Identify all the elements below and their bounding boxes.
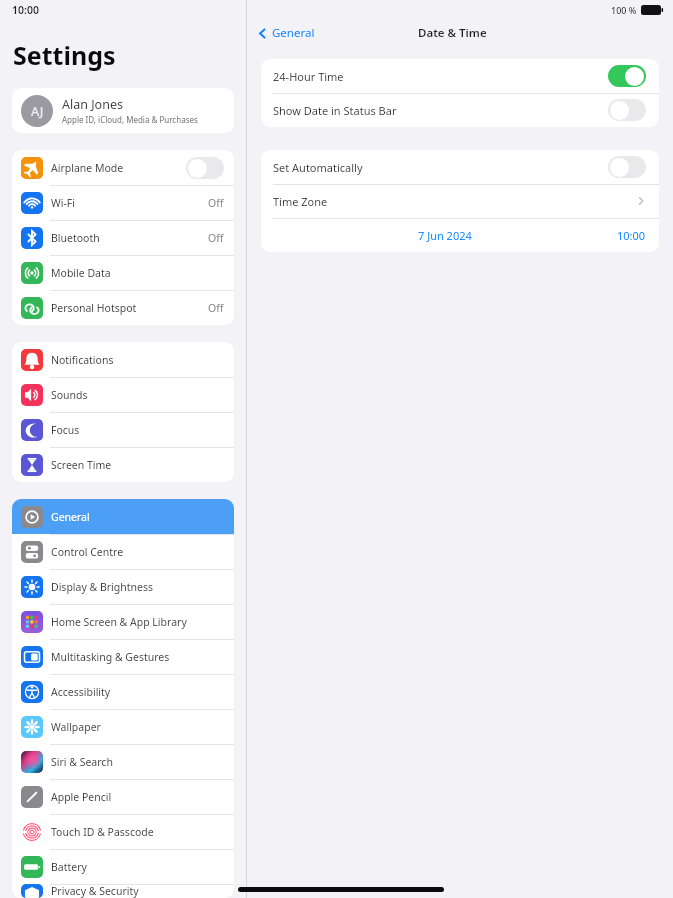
staticText: Bluetooth [51,231,208,245]
staticText: Wi-Fi [51,196,208,210]
other: Open Time Zone [636,196,646,206]
button[interactable]: Airplane Mode [12,150,234,185]
button[interactable]: Set Automatically [261,150,659,184]
button[interactable]: Battery [12,849,234,884]
staticText: Show Date in Status Bar [273,103,608,118]
button[interactable]: 10:00 [617,228,646,243]
button[interactable]: Notifications [12,342,234,377]
staticText: Alan Jones [62,96,123,113]
staticText: Multitasking & Gestures [51,650,224,664]
button[interactable]: General [12,499,234,534]
staticText: Notifications [51,353,224,367]
button[interactable]: Wi-Fi [12,185,234,220]
staticText: 24-Hour Time [273,69,608,84]
staticText: Control Centre [51,545,224,559]
staticText: Privacy & Security [51,884,224,898]
staticText: Off [208,196,224,210]
button[interactable]: Time Zone [261,184,659,218]
button[interactable]: Toggle off [608,156,646,178]
staticText: Date & Time [418,25,487,41]
staticText: 10:00 [12,3,39,17]
button[interactable]: 7 Jun 2024 [418,228,472,243]
staticText: Focus [51,423,224,437]
staticText: Mobile Data [51,266,224,280]
staticText: Time Zone [273,194,636,209]
staticText: Airplane Mode [51,161,186,175]
staticText: 100 % [611,4,637,16]
button[interactable]: Toggle off [608,99,646,121]
button[interactable]: Toggle on [608,65,646,87]
button[interactable]: Home Screen & App Library [12,604,234,639]
button[interactable]: Focus [12,412,234,447]
staticText: Personal Hotspot [51,301,208,315]
button[interactable]: AJ [12,88,234,133]
button[interactable]: Accessibility [12,674,234,709]
staticText: Sounds [51,388,224,402]
button[interactable]: Multitasking & Gestures [12,639,234,674]
staticText: General [51,510,224,524]
staticText: Screen Time [51,458,224,472]
button[interactable]: Screen Time [12,447,234,482]
button[interactable]: Touch ID & Passcode [12,814,234,849]
button[interactable]: Privacy & Security [12,884,234,898]
staticText: Home Screen & App Library [51,615,224,629]
button[interactable]: Bluetooth [12,220,234,255]
button[interactable]: Control Centre [12,534,234,569]
button[interactable]: Mobile Data [12,255,234,290]
button[interactable]: Siri & Search [12,744,234,779]
staticText: Set Automatically [273,160,608,175]
staticText: Display & Brightness [51,580,224,594]
staticText: Apple ID, iCloud, Media & Purchases [62,114,198,125]
button[interactable]: Sounds [12,377,234,412]
staticText: Settings [13,38,116,72]
button[interactable]: Apple Pencil [12,779,234,814]
staticText: AJ [31,103,44,120]
staticText: General [272,25,315,41]
staticText: Apple Pencil [51,790,224,804]
button[interactable]: Wallpaper [12,709,234,744]
staticText: Siri & Search [51,755,224,769]
staticText: Battery [51,860,224,874]
button[interactable]: Display & Brightness [12,569,234,604]
button[interactable]: Personal Hotspot [12,290,234,325]
button[interactable]: Show Date in Status Bar [261,93,659,127]
button[interactable]: General [257,25,315,41]
staticText: Off [208,301,224,315]
button[interactable]: 24-Hour Time [261,59,659,93]
staticText: Off [208,231,224,245]
button[interactable]: Toggle off [186,157,224,179]
staticText: Wallpaper [51,720,224,734]
staticText: Accessibility [51,685,224,699]
staticText: Touch ID & Passcode [51,825,224,839]
